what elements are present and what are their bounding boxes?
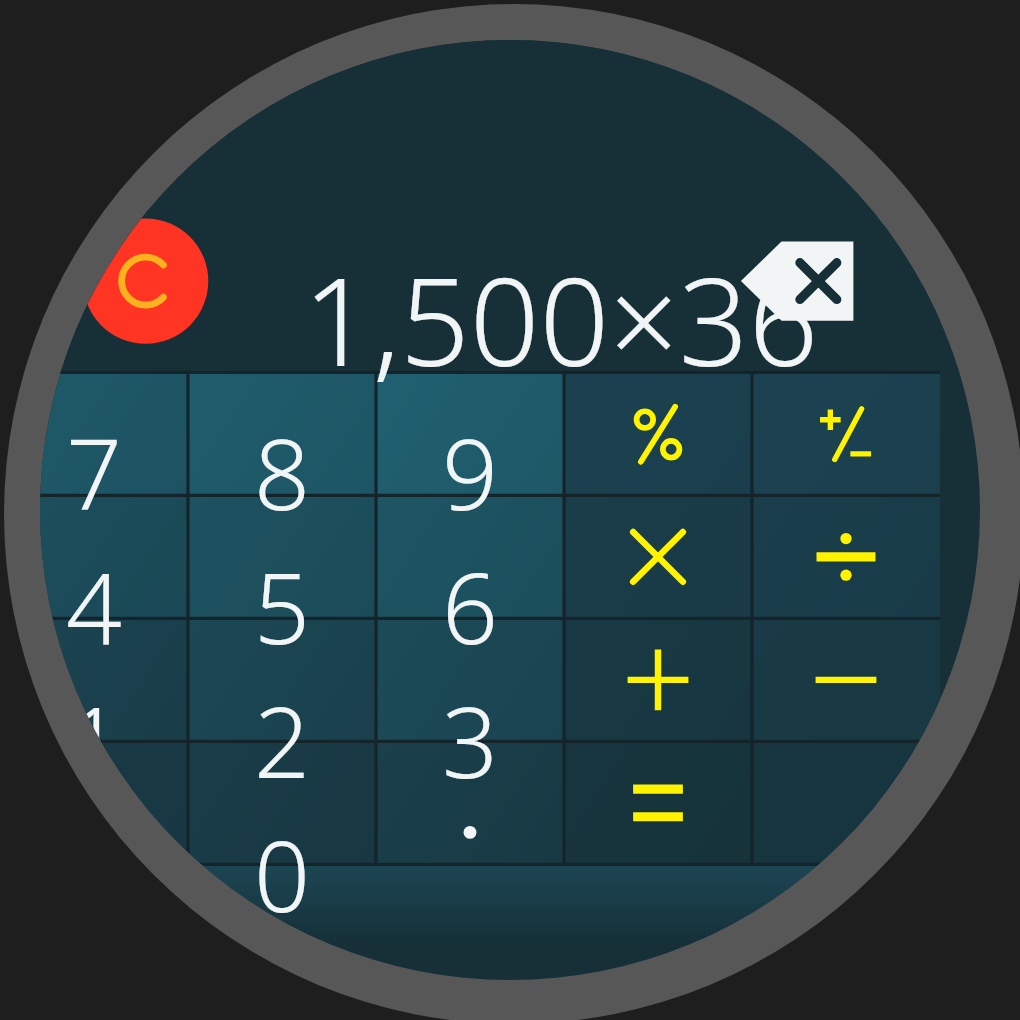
button[interactable]: 8 — [188, 404, 376, 538]
button — [376, 806, 564, 940]
button[interactable]: 9 — [376, 404, 564, 538]
button — [40, 806, 188, 940]
button[interactable]: Plus minus — [752, 404, 940, 538]
staticText: 1,500×36 — [303, 236, 819, 402]
button[interactable]: 6 — [376, 538, 564, 672]
staticText: 2 — [254, 673, 310, 806]
button — [752, 806, 940, 940]
button[interactable]: Divide — [752, 538, 940, 672]
staticText: 5 — [254, 539, 310, 672]
button[interactable]: Subtract — [752, 672, 940, 806]
staticText: 6 — [442, 539, 498, 672]
button[interactable]: Add — [564, 672, 752, 806]
button[interactable]: Percent — [564, 404, 752, 538]
button[interactable]: 7 — [40, 404, 188, 538]
staticText: 9 — [442, 405, 498, 538]
button[interactable]: 4 — [40, 538, 188, 672]
staticText: 1 — [66, 673, 122, 806]
button[interactable]: 1 — [40, 672, 188, 806]
staticText: 4 — [66, 539, 122, 672]
button[interactable]: 2 — [188, 672, 376, 806]
staticText: 0 — [254, 807, 310, 940]
button[interactable]: 0 — [188, 806, 376, 940]
staticText: 7 — [66, 405, 122, 538]
staticText: 8 — [254, 405, 310, 538]
button[interactable]: Clear — [90, 237, 226, 373]
button[interactable]: Equals — [564, 806, 752, 940]
button[interactable]: 3 — [376, 672, 564, 806]
button[interactable]: Multiply — [564, 538, 752, 672]
button[interactable]: 5 — [188, 538, 376, 672]
staticText: 3 — [442, 673, 498, 806]
button[interactable]: Backspace — [800, 248, 932, 380]
